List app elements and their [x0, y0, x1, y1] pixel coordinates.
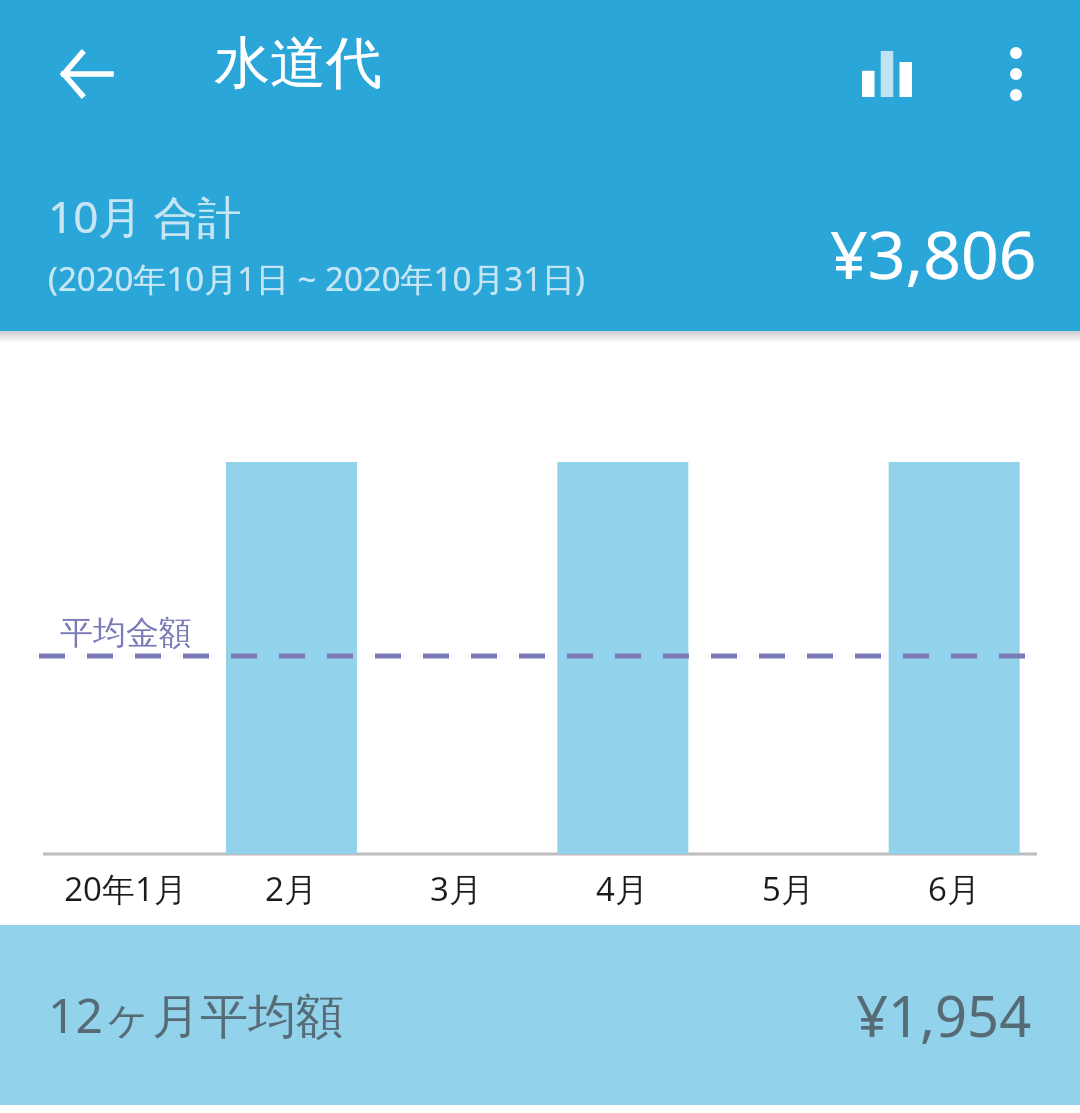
staticText: (2020年10月1日 ~ 2020年10月31日): [48, 256, 585, 301]
staticText: 平均金額: [60, 612, 192, 654]
staticText: 4月: [596, 866, 648, 911]
staticText: ¥1,954: [856, 977, 1032, 1053]
staticText: 12ヶ月平均額: [48, 982, 345, 1048]
staticText: 5月: [762, 866, 814, 911]
staticText: 10月 合計: [48, 186, 242, 246]
staticText: 水道代: [214, 28, 382, 99]
button[interactable]: Back: [38, 26, 134, 122]
staticText: 2月: [265, 866, 317, 911]
staticText: ¥3,806: [830, 208, 1037, 298]
button[interactable]: 12ヶ月平均額: [0, 925, 1080, 1105]
button[interactable]: Chart: [839, 26, 935, 122]
staticText: 6月: [928, 866, 980, 911]
button[interactable]: More options: [968, 26, 1064, 122]
button[interactable]: 水道代: [214, 28, 382, 99]
staticText: 20年1月: [64, 866, 187, 911]
staticText: 3月: [430, 866, 482, 911]
